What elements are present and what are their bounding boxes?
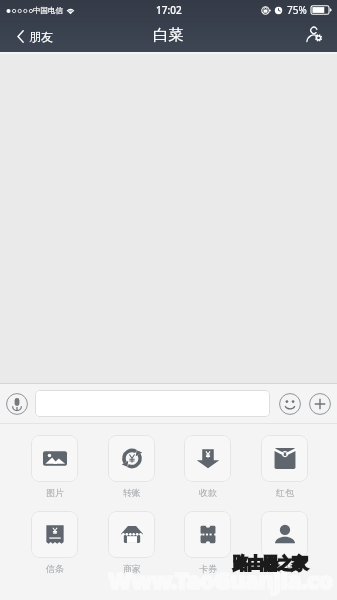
button[interactable]: Voice input [3,390,30,417]
staticText: 商家 [123,563,141,574]
staticText: 17:02 [156,3,182,17]
staticText: 红包 [276,487,294,498]
button[interactable]: 朋友 [0,23,63,50]
staticText: 图片 [46,487,64,498]
button[interactable]: 名片 [261,511,308,574]
button[interactable]: 收款 [184,435,231,498]
button[interactable]: Contact settings [294,22,337,51]
staticText: 路由器之家 [233,554,307,574]
button[interactable]: 图片 [31,435,78,498]
staticText: 名片 [276,563,294,574]
staticText: 转账 [123,487,141,498]
button[interactable]: Emoji [278,392,302,416]
button[interactable]: 卡券 [184,511,231,574]
staticText: 朋友 [29,29,53,44]
staticText: 收款 [199,487,217,498]
button[interactable]: 转账 [108,435,155,498]
staticText: Www.TaoGuanJia.com [108,564,337,600]
staticText: 路由器之家 [233,554,307,574]
staticText: 中国电信 [33,6,63,15]
staticText: 卡券 [199,563,217,574]
staticText: Www.TaoGuanJia.com [108,564,337,600]
button[interactable]: 信条 [31,511,78,574]
staticText: 白菜 [153,25,184,45]
staticText: 信条 [46,563,64,574]
staticText: 75% [287,3,307,17]
button[interactable] [35,390,270,417]
button[interactable]: More [308,392,332,416]
button[interactable]: 红包 [261,435,308,498]
button[interactable]: 商家 [108,511,155,574]
